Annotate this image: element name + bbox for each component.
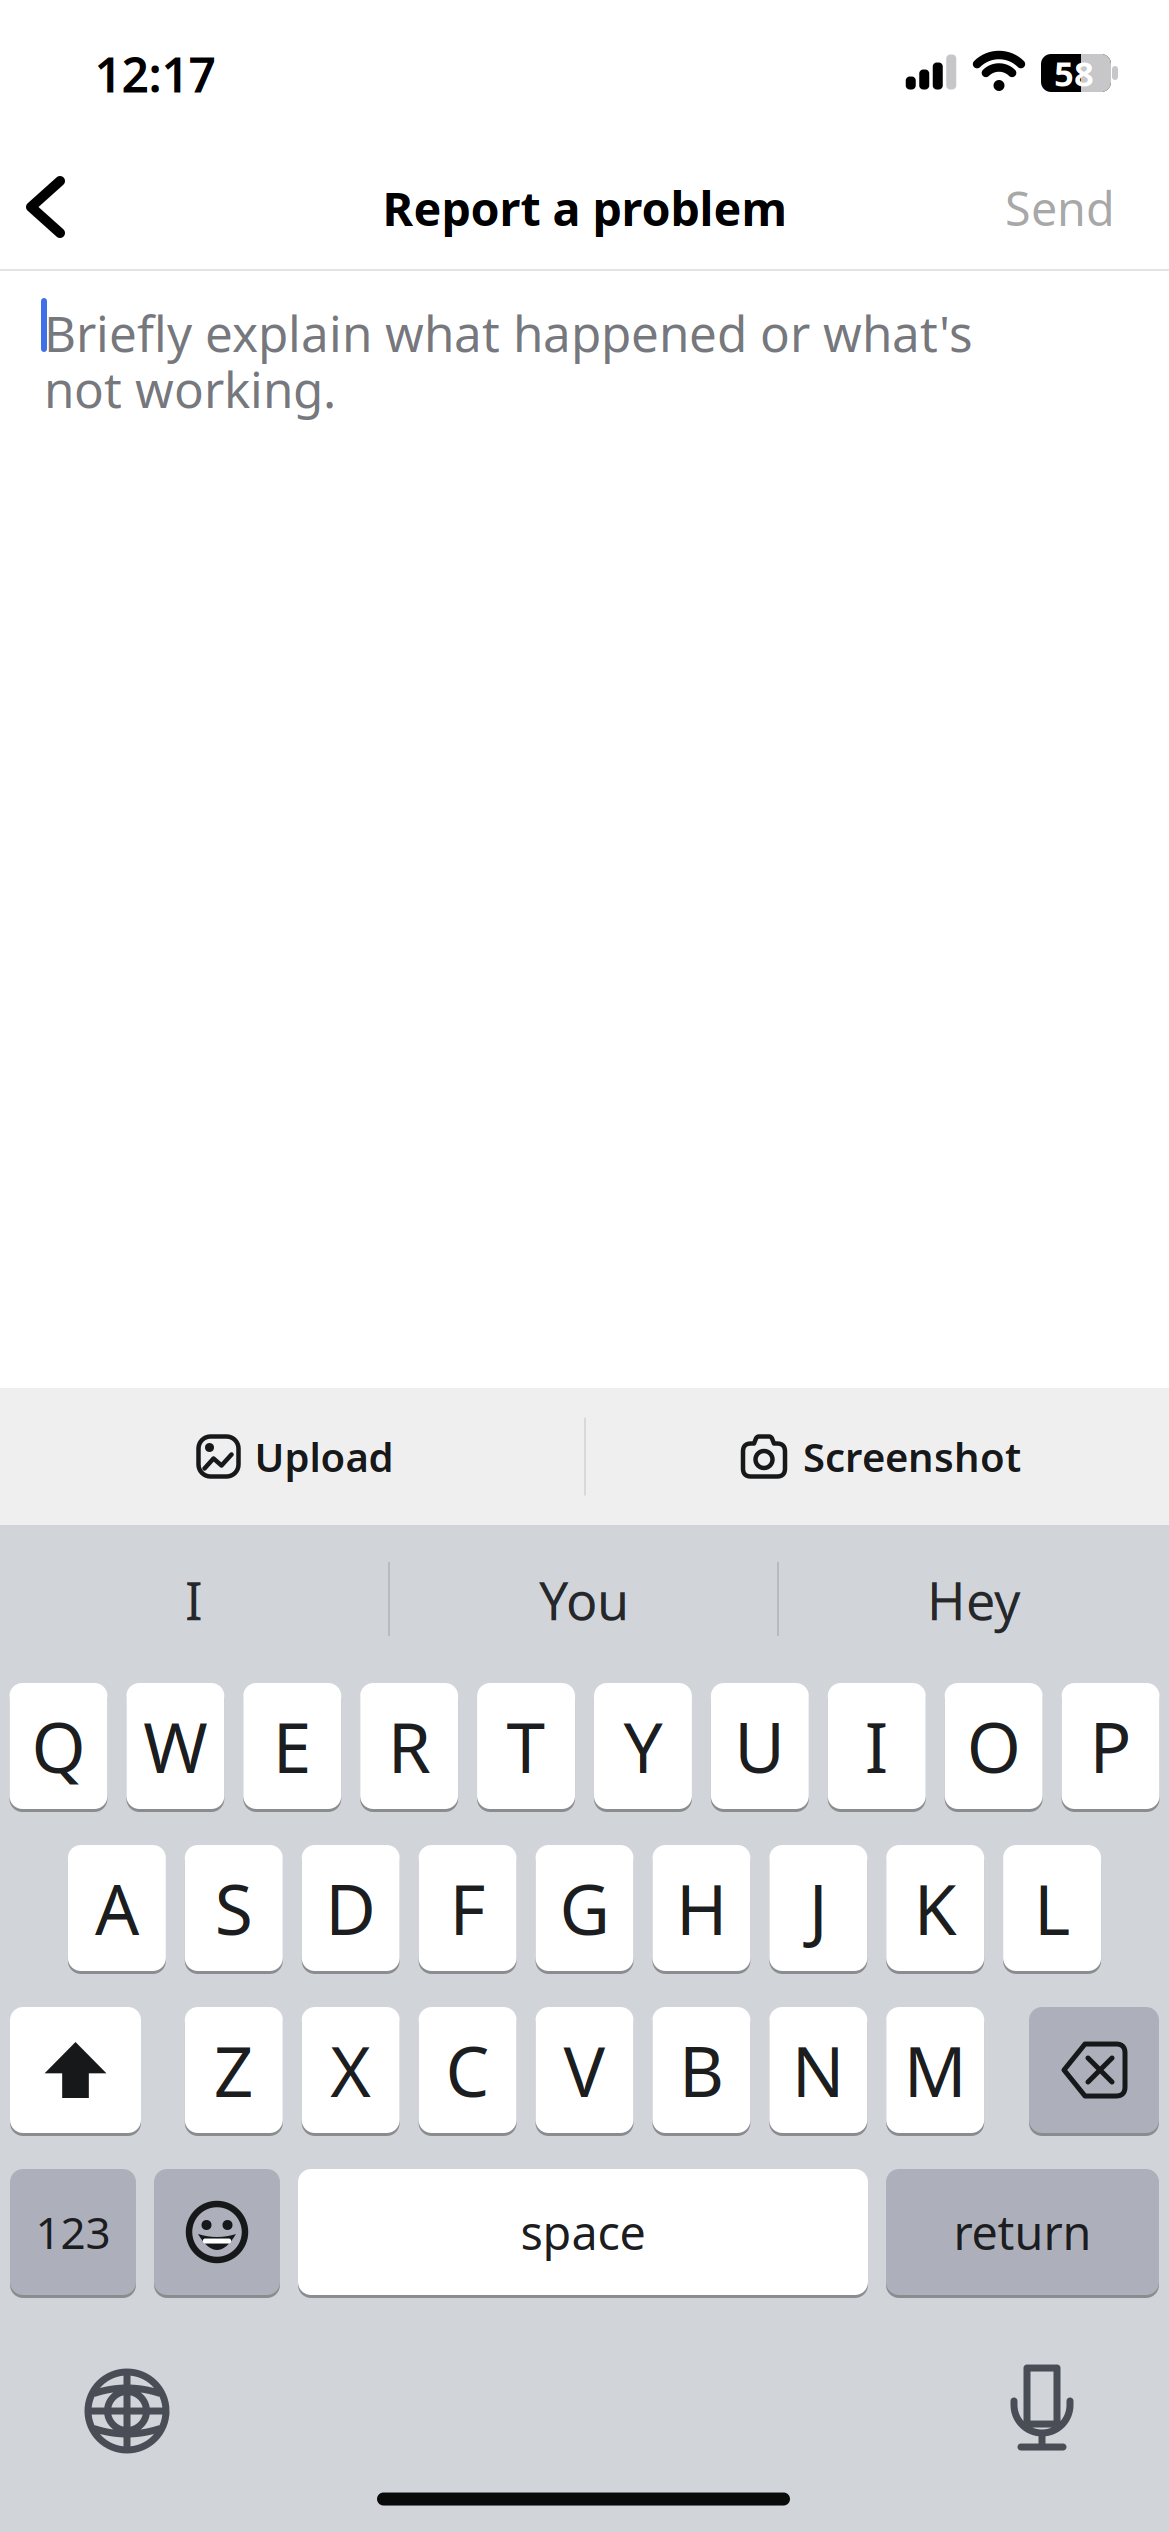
staticText: not working.	[44, 356, 336, 421]
button[interactable]: D	[302, 1843, 400, 1973]
button[interactable]: Screenshot	[601, 1388, 1161, 1525]
staticText: A	[95, 1862, 139, 1954]
staticText: space	[520, 2201, 645, 2263]
staticText: U	[734, 1700, 785, 1792]
button[interactable]: F	[419, 1843, 517, 1973]
staticText: H	[676, 1862, 727, 1954]
button[interactable]: Hey	[781, 1525, 1166, 1675]
staticText: K	[914, 1862, 957, 1954]
staticText: You	[539, 1565, 629, 1635]
staticText: O	[967, 1700, 1021, 1792]
button[interactable]: S	[185, 1843, 283, 1973]
button[interactable]: 123	[10, 2167, 136, 2297]
staticText: Z	[214, 2024, 254, 2116]
button[interactable]: Emoji	[154, 2167, 280, 2297]
button[interactable]: Upload	[16, 1388, 576, 1525]
button[interactable]: M	[886, 2005, 984, 2135]
button[interactable]: B	[652, 2005, 750, 2135]
staticText: Send	[1005, 177, 1115, 239]
staticText: R	[388, 1700, 431, 1792]
button[interactable]: E	[243, 1681, 341, 1811]
button[interactable]: H	[652, 1843, 750, 1973]
staticText: Screenshot	[803, 1430, 1021, 1483]
staticText: Report a problem	[382, 177, 787, 239]
button[interactable]: space	[298, 2167, 868, 2297]
button[interactable]: Back	[26, 177, 64, 237]
button[interactable]: X	[302, 2005, 400, 2135]
button[interactable]: Delete	[1029, 2005, 1159, 2135]
staticText: 123	[35, 2203, 110, 2261]
staticText: X	[330, 2024, 371, 2116]
staticText: S	[215, 1862, 253, 1954]
button[interactable]: Z	[185, 2005, 283, 2135]
button[interactable]: G	[535, 1843, 633, 1973]
button[interactable]: A	[68, 1843, 166, 1973]
button[interactable]: W	[126, 1681, 224, 1811]
staticText: 58	[1054, 50, 1094, 96]
button[interactable]: J	[769, 1843, 867, 1973]
button[interactable]: K	[886, 1843, 984, 1973]
staticText: T	[507, 1700, 546, 1792]
staticText: I	[185, 1565, 203, 1635]
button[interactable]: Dictation	[1012, 2365, 1072, 2451]
staticText: Y	[623, 1700, 662, 1792]
button[interactable]: I	[1, 1525, 386, 1675]
staticText: D	[325, 1862, 376, 1954]
staticText: E	[273, 1700, 312, 1792]
staticText: Q	[31, 1700, 85, 1792]
button[interactable]: You	[391, 1525, 776, 1675]
staticText: 12:17	[94, 42, 215, 106]
button[interactable]: I	[828, 1681, 926, 1811]
staticText: Upload	[254, 1430, 393, 1483]
button[interactable]: return	[886, 2167, 1159, 2297]
button[interactable]: V	[535, 2005, 633, 2135]
button[interactable]: L	[1003, 1843, 1101, 1973]
staticText: return	[953, 2201, 1091, 2263]
button[interactable]: Shift	[10, 2005, 141, 2135]
staticText: C	[446, 2024, 490, 2116]
staticText: B	[679, 2024, 724, 2116]
staticText: Hey	[927, 1565, 1021, 1635]
button[interactable]: N	[769, 2005, 867, 2135]
staticText: W	[143, 1700, 207, 1792]
staticText: I	[865, 1700, 889, 1792]
staticText: Briefly explain what happened or what's	[44, 300, 973, 365]
button[interactable]: Q	[9, 1681, 107, 1811]
button[interactable]: Send	[1005, 177, 1115, 239]
staticText: M	[904, 2024, 967, 2116]
button[interactable]: O	[945, 1681, 1043, 1811]
button[interactable]: Next keyboard	[85, 2369, 169, 2453]
staticText: L	[1034, 1862, 1070, 1954]
staticText: J	[809, 1862, 828, 1954]
staticText: F	[450, 1862, 486, 1954]
button[interactable]: Y	[594, 1681, 692, 1811]
button[interactable]: P	[1062, 1681, 1160, 1811]
staticText: G	[559, 1862, 609, 1954]
button[interactable]: T	[477, 1681, 575, 1811]
button[interactable]: U	[711, 1681, 809, 1811]
staticText: N	[792, 2024, 845, 2116]
button[interactable]: R	[360, 1681, 458, 1811]
staticText: V	[563, 2024, 605, 2116]
staticText: P	[1090, 1700, 1132, 1792]
button[interactable]: C	[419, 2005, 517, 2135]
